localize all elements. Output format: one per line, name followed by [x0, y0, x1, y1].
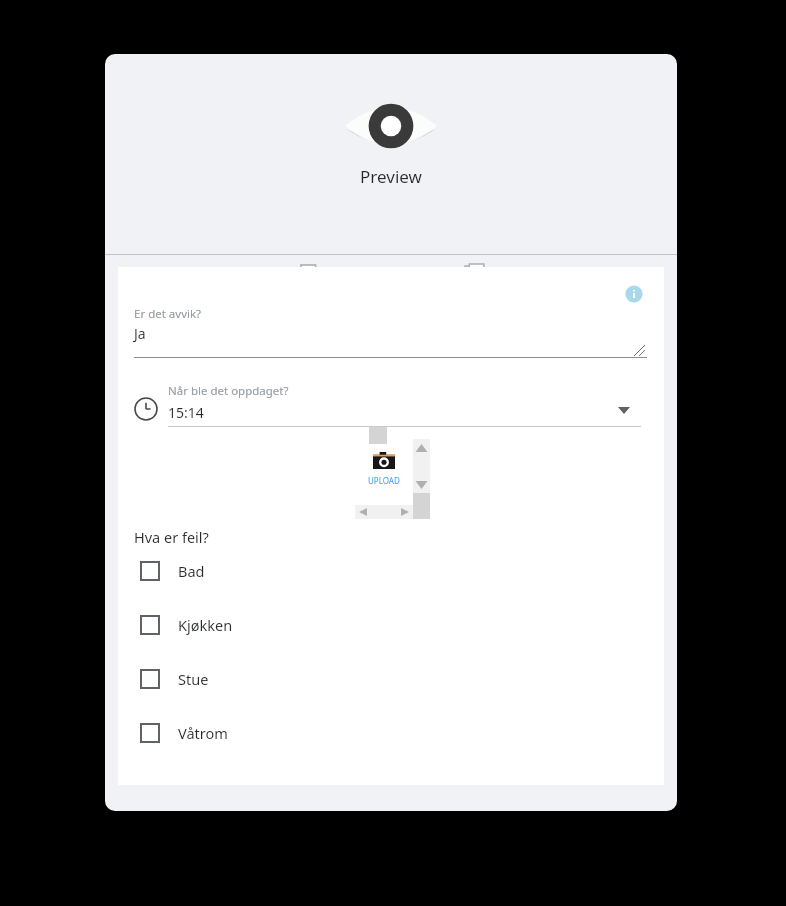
staticText: Hva er feil? [134, 527, 209, 547]
other: PDF view [465, 264, 487, 290]
button[interactable]: Kjøkken [130, 605, 350, 645]
button[interactable]: Bad [130, 551, 350, 591]
button[interactable]: Upload photo [355, 444, 413, 502]
staticText: 15:14 [168, 403, 204, 422]
staticText: UPLOAD [368, 475, 400, 486]
button[interactable]: Våtrom [130, 713, 350, 753]
other: Upload photo [373, 452, 395, 469]
staticText: Er det avvik? [134, 306, 202, 322]
staticText: Våtrom [178, 723, 228, 743]
staticText: Når ble det oppdaget? [168, 383, 289, 399]
staticText: Ja [134, 324, 146, 343]
staticText: Bad [178, 561, 205, 581]
staticText: Stue [178, 669, 209, 689]
button[interactable]: Information [623, 283, 645, 305]
other: Data input [300, 264, 322, 290]
button[interactable]: Stue [130, 659, 350, 699]
other: Time [134, 397, 158, 421]
button[interactable]: Data input [228, 255, 393, 310]
other: Open time picker [618, 407, 630, 414]
staticText: Kjøkken [178, 615, 233, 635]
staticText: Preview [360, 165, 422, 188]
button[interactable]: PDF view [393, 255, 558, 310]
